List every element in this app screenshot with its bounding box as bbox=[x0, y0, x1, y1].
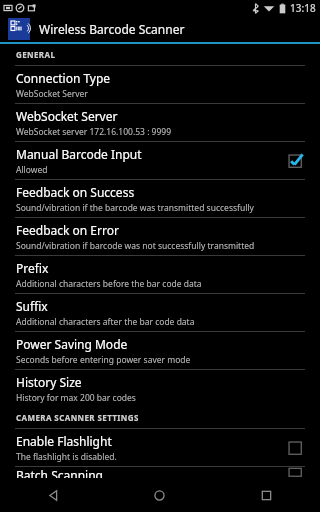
staticText: History Size bbox=[16, 374, 82, 390]
button[interactable]: Enable Flashlight bbox=[0, 429, 320, 466]
staticText: Power Saving Mode bbox=[16, 336, 128, 352]
button[interactable]: WebSocket Server bbox=[0, 104, 320, 141]
staticText: Manual Barcode Input bbox=[16, 146, 142, 162]
button[interactable]: Unchecked bbox=[284, 467, 306, 478]
staticText: The flashlight is disabled. bbox=[16, 451, 117, 463]
staticText: Prefix bbox=[16, 260, 49, 276]
staticText: Batch Scanning bbox=[16, 467, 103, 478]
staticText: Connection Type bbox=[16, 70, 111, 86]
button[interactable]: Prefix bbox=[0, 256, 320, 293]
staticText: WebSocket server 172.16.100.53 : 9999 bbox=[16, 126, 172, 138]
staticText: Additional characters before the bar cod… bbox=[16, 278, 202, 290]
button[interactable]: Home bbox=[106, 478, 213, 512]
staticText: WebSocket Server bbox=[16, 88, 88, 100]
staticText: CAMERA SCANNER SETTINGS bbox=[16, 412, 139, 423]
staticText: Additional characters after the bar code… bbox=[16, 316, 195, 328]
staticText: Enable Flashlight bbox=[16, 433, 112, 449]
staticText: Wireless Barcode Scanner bbox=[39, 21, 185, 37]
button[interactable]: Batch Scanning bbox=[0, 467, 320, 478]
staticText: Feedback on Success bbox=[16, 184, 135, 200]
button[interactable]: Feedback on Success bbox=[0, 180, 320, 217]
staticText: History for max 200 bar codes bbox=[16, 392, 136, 404]
button[interactable]: Power Saving Mode bbox=[0, 332, 320, 369]
staticText: Suffix bbox=[16, 298, 48, 314]
button[interactable]: Wireless Barcode Scanner bbox=[0, 16, 320, 42]
staticText: Seconds before entering power saver mode bbox=[16, 354, 191, 366]
button[interactable]: Suffix bbox=[0, 294, 320, 331]
button[interactable]: Checked bbox=[284, 150, 306, 172]
button[interactable]: Back bbox=[0, 478, 106, 512]
button[interactable]: Connection Type bbox=[0, 66, 320, 103]
button[interactable]: History Size bbox=[0, 370, 320, 407]
staticText: Feedback on Error bbox=[16, 222, 119, 238]
button[interactable]: Recent apps bbox=[213, 478, 320, 512]
button[interactable]: Unchecked bbox=[284, 437, 306, 459]
staticText: Allowed bbox=[16, 164, 48, 176]
staticText: WebSocket Server bbox=[16, 108, 118, 124]
staticText: 13:18 bbox=[290, 1, 316, 15]
staticText: Sound/vibration if barcode was not succe… bbox=[16, 240, 255, 252]
button[interactable]: Manual Barcode Input bbox=[0, 142, 320, 179]
staticText: Sound/vibration if the barcode was trans… bbox=[16, 202, 254, 214]
button[interactable]: Feedback on Error bbox=[0, 218, 320, 255]
staticText: GENERAL bbox=[16, 49, 56, 60]
